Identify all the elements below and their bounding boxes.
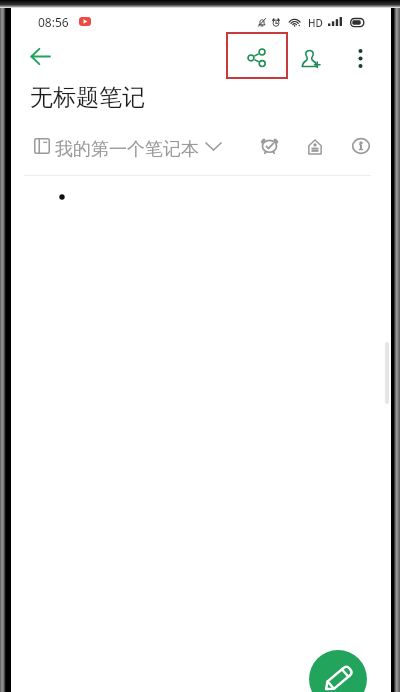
- staticText: 08:56: [38, 14, 69, 30]
- button[interactable]: Tags: [298, 136, 334, 172]
- staticText: HD: [308, 16, 323, 30]
- button[interactable]: Back: [18, 34, 62, 78]
- button[interactable]: Share: [226, 32, 288, 79]
- button[interactable]: More options: [338, 36, 382, 80]
- button[interactable]: Reminder: [251, 136, 287, 172]
- button[interactable]: Add collaborator: [287, 36, 331, 80]
- button[interactable]: New note: [309, 650, 367, 692]
- staticText: 无标题笔记: [30, 83, 145, 112]
- staticText: 我的第一个笔记本: [55, 138, 199, 161]
- button[interactable]: [32, 136, 226, 172]
- button[interactable]: Note info: [344, 136, 380, 172]
